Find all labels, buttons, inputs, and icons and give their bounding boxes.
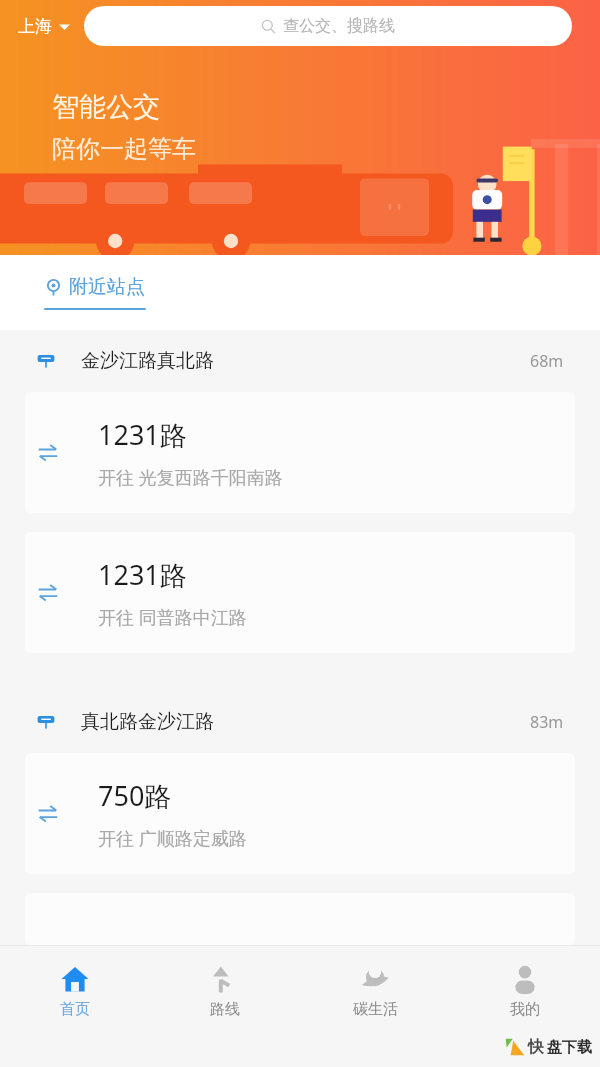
staticText: 陪你一起等车 xyxy=(52,134,196,164)
staticText: 真北路金沙江路 xyxy=(81,710,214,734)
other: 首页 xyxy=(60,964,90,994)
button[interactable]: 碳生活 xyxy=(300,946,450,1036)
button[interactable]: 真北路金沙江路 xyxy=(0,691,600,753)
button[interactable]: 上海 xyxy=(0,16,76,37)
staticText: 金沙江路真北路 xyxy=(81,349,214,373)
other: 路线 xyxy=(210,964,240,994)
staticText: 盘下载 xyxy=(547,1038,592,1057)
staticText: 68m xyxy=(530,350,564,372)
staticText: 1231路 xyxy=(98,556,187,593)
button[interactable]: 路线 xyxy=(150,946,300,1036)
staticText: 83m xyxy=(530,711,564,733)
staticText: 1231路 xyxy=(98,416,187,453)
staticText: 开往 广顺路定威路 xyxy=(98,826,247,851)
other: 我的 xyxy=(510,964,540,994)
staticText: 上海 xyxy=(18,16,52,37)
staticText: 查公交、搜路线 xyxy=(283,16,395,36)
staticText: 开往 光复西路千阳南路 xyxy=(98,465,283,490)
staticText: 开往 同普路中江路 xyxy=(98,605,247,630)
staticText: 首页 xyxy=(60,1000,90,1019)
other: 碳生活 xyxy=(360,964,390,994)
staticText: 我的 xyxy=(510,1000,540,1019)
button[interactable]: 金沙江路真北路 xyxy=(0,330,600,392)
button[interactable]: 1231路 xyxy=(25,532,575,653)
button[interactable]: 750路 xyxy=(25,753,575,874)
staticText: 碳生活 xyxy=(353,1000,398,1019)
staticText: 附近站点 xyxy=(69,275,145,299)
staticText: 750路 xyxy=(98,777,172,814)
button[interactable]: 1231路 xyxy=(25,392,575,513)
button[interactable]: 附近站点 xyxy=(44,275,146,310)
button[interactable]: 首页 xyxy=(0,946,150,1036)
staticText: 智能公交 xyxy=(52,90,160,124)
button[interactable]: 查公交、搜路线 xyxy=(84,6,572,46)
staticText: 快 xyxy=(528,1037,544,1057)
button[interactable]: 我的 xyxy=(450,946,600,1036)
staticText: 路线 xyxy=(210,1000,240,1019)
